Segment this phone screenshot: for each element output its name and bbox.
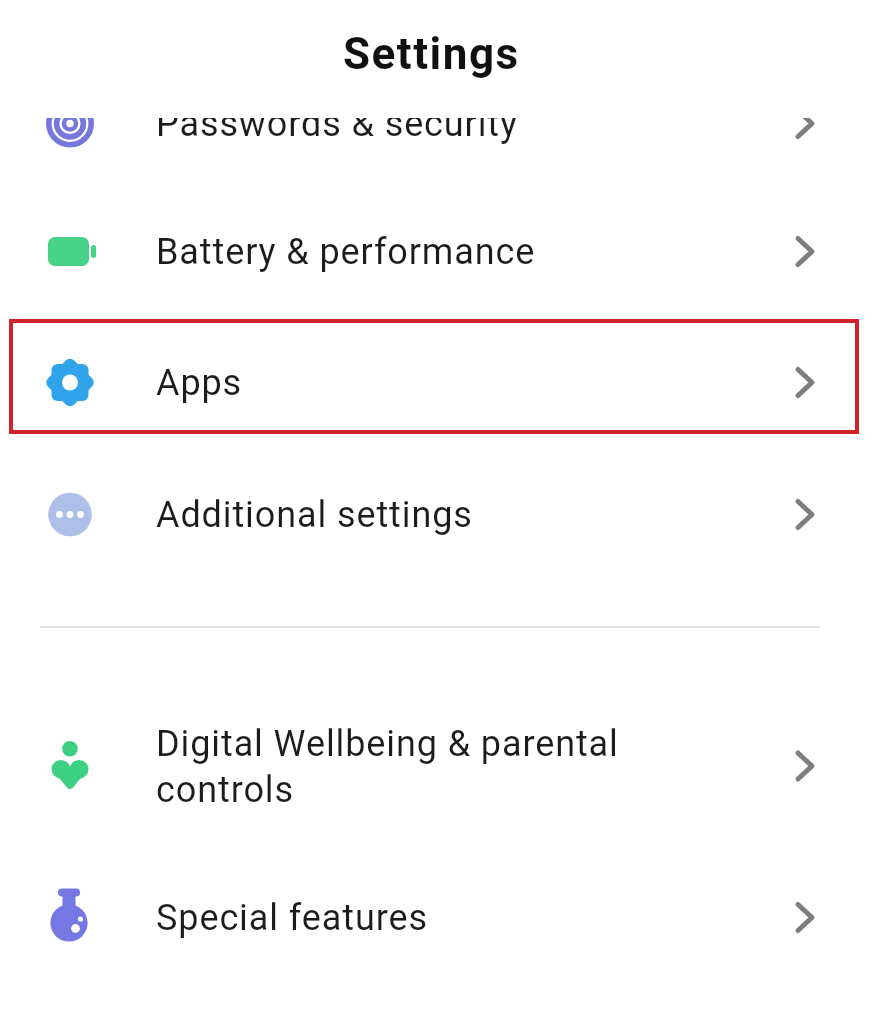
staticText: Additional settings — [156, 494, 473, 536]
staticText: Settings — [343, 28, 520, 80]
staticText: Passwords & security — [156, 103, 518, 145]
button[interactable]: Additional settings — [0, 449, 874, 580]
button[interactable]: Passwords & security — [0, 58, 874, 189]
button[interactable]: Digital Wellbeing & parental controls — [0, 681, 874, 851]
staticText: Apps — [156, 362, 243, 404]
button[interactable]: Special features — [0, 852, 874, 983]
staticText: Digital Wellbeing & parental controls — [156, 723, 619, 810]
staticText: Battery & performance — [156, 231, 536, 273]
button[interactable]: Apps — [0, 317, 874, 448]
staticText: Special features — [156, 897, 428, 939]
button[interactable]: Battery & performance — [0, 186, 874, 317]
